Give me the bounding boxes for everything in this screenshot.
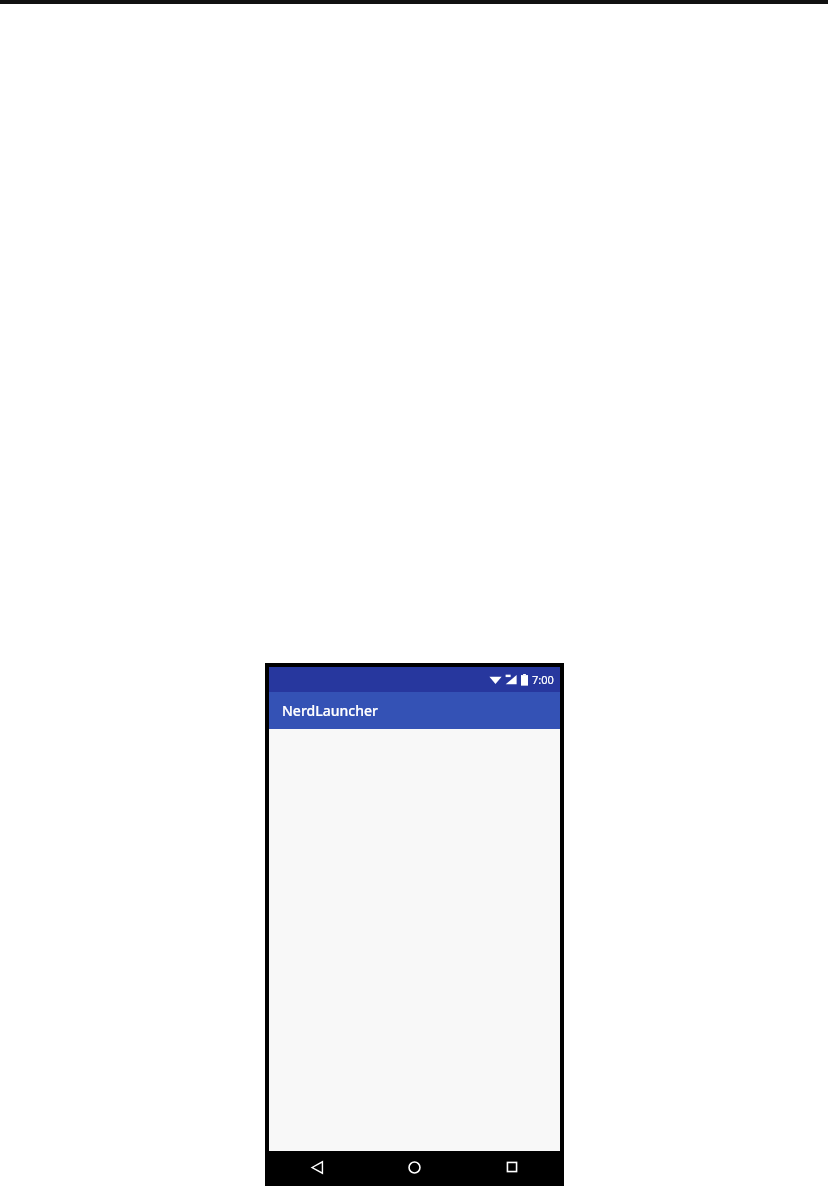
button[interactable]: Home — [366, 1151, 463, 1183]
staticText: NerdLauncher — [282, 701, 378, 720]
button[interactable]: NerdLauncher — [269, 692, 560, 729]
staticText: 7:00 — [532, 672, 554, 687]
button[interactable]: Back — [269, 1151, 366, 1183]
button[interactable]: Recent apps — [463, 1151, 560, 1183]
